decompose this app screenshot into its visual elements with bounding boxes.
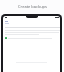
- button[interactable]: [5, 37, 58, 39]
- staticText: Create backups: [18, 4, 47, 9]
- button[interactable]: Create backups: [0, 0, 64, 12]
